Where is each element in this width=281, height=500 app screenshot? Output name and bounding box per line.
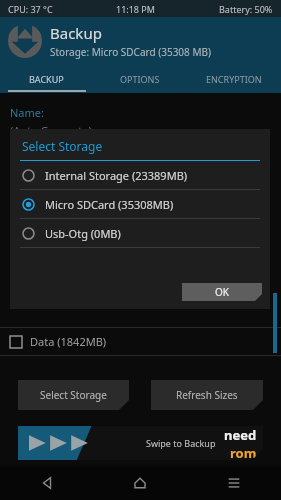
button[interactable]: Swipe to Backup	[18, 426, 263, 460]
staticText: (Auto Generate)	[10, 123, 92, 138]
staticText: Usb-Otg (0MB)	[45, 226, 121, 241]
button[interactable]: Refresh Sizes	[151, 380, 263, 410]
staticText: Storage: Micro SDCard (35308 MB)	[50, 45, 211, 59]
staticText: Data (1842MB)	[30, 334, 107, 349]
button[interactable]: BACKUP	[0, 64, 93, 93]
other: App icon	[8, 24, 42, 58]
staticText: Refresh Sizes	[176, 388, 238, 402]
staticText: Swipe to Backup	[146, 437, 216, 449]
staticText: Name:	[10, 105, 44, 120]
staticText: Select Storage	[40, 388, 107, 402]
staticText: OK	[215, 285, 229, 299]
staticText: need	[224, 426, 257, 444]
button[interactable]: OK	[182, 283, 262, 301]
button[interactable]: OPTIONS	[93, 64, 187, 93]
button[interactable]: Internal Storage (23389MB)	[10, 161, 270, 189]
button[interactable]: Recents	[187, 466, 281, 500]
button[interactable]: Back	[0, 466, 93, 500]
staticText: 11:18 PM	[116, 3, 155, 15]
staticText: BACKUP	[29, 73, 64, 85]
staticText: OPTIONS	[120, 73, 160, 85]
staticText: Select Storage	[22, 138, 103, 154]
staticText: Backup	[50, 23, 102, 43]
staticText: CPU: 37 °C	[8, 3, 53, 15]
staticText: rom	[230, 444, 257, 460]
staticText: Micro SDCard (35308MB)	[45, 197, 174, 212]
staticText: ENCRYPTION	[206, 73, 262, 85]
button[interactable]: Micro SDCard (35308MB)	[10, 190, 270, 218]
staticText: Battery: 50%	[219, 3, 273, 15]
staticText: Internal Storage (23389MB)	[45, 168, 188, 183]
button[interactable]: ENCRYPTION	[187, 64, 281, 93]
button[interactable]: Usb-Otg (0MB)	[10, 219, 270, 247]
button[interactable]: Home	[93, 466, 187, 500]
button[interactable]: Select Storage	[18, 380, 129, 410]
button[interactable]: Data (1842MB)	[0, 328, 281, 355]
